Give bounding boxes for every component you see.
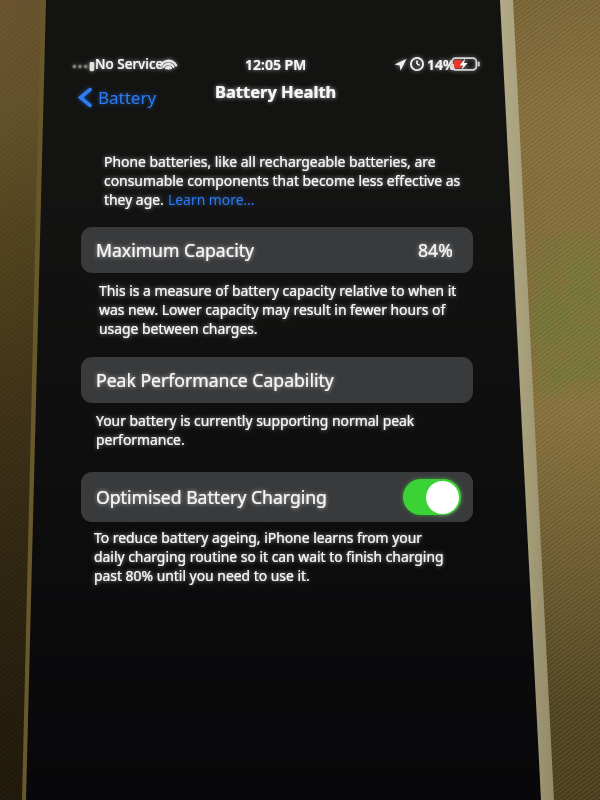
- staticText: No Service: [95, 55, 164, 73]
- button[interactable]: Optimised Battery Charging: [81, 472, 473, 522]
- staticText: consumable components that become less e…: [104, 171, 461, 190]
- staticText: 84%: [418, 238, 453, 262]
- staticText: Battery: [98, 86, 157, 109]
- staticText: daily charging routine so it can wait to…: [94, 547, 444, 566]
- staticText: 14%: [427, 55, 456, 74]
- staticText: This is a measure of battery capacity re…: [99, 281, 457, 300]
- staticText: consumable components that become less e…: [104, 171, 461, 190]
- button[interactable]: Peak Performance Capability: [81, 357, 473, 403]
- staticText: Battery: [98, 86, 157, 109]
- button[interactable]: Peak Performance Capability: [81, 357, 473, 403]
- staticText: To reduce battery ageing, iPhone learns …: [94, 528, 423, 547]
- staticText: Optimised Battery Charging: [96, 485, 327, 509]
- staticText: daily charging routine so it can wait to…: [94, 547, 444, 566]
- staticText: Phone batteries, like all rechargeable b…: [104, 152, 436, 171]
- staticText: Battery Health: [215, 80, 337, 102]
- staticText: was new. Lower capacity may result in fe…: [99, 300, 446, 319]
- staticText: Maximum Capacity: [96, 238, 255, 262]
- staticText: usage between charges.: [99, 319, 258, 338]
- staticText: 84%: [418, 238, 453, 262]
- button[interactable]: Learn more…: [168, 190, 255, 209]
- staticText: This is a measure of battery capacity re…: [99, 281, 457, 300]
- button[interactable]: Battery: [76, 86, 160, 109]
- staticText: Peak Performance Capability: [96, 368, 334, 392]
- staticText: Optimised Battery Charging: [96, 485, 327, 509]
- staticText: usage between charges.: [99, 319, 258, 338]
- button[interactable]: Battery: [76, 86, 160, 109]
- staticText: To reduce battery ageing, iPhone learns …: [94, 528, 423, 547]
- staticText: 12:05 PM: [245, 55, 307, 74]
- staticText: past 80% until you need to use it.: [94, 566, 310, 585]
- staticText: Your battery is currently supporting nor…: [96, 411, 415, 430]
- staticText: they age.: [104, 190, 168, 209]
- button[interactable]: Maximum Capacity: [81, 227, 473, 273]
- staticText: 12:05 PM: [245, 55, 307, 74]
- staticText: Maximum Capacity: [96, 238, 255, 262]
- staticText: they age.: [104, 190, 168, 209]
- staticText: Battery Health: [215, 80, 337, 102]
- staticText: Phone batteries, like all rechargeable b…: [104, 152, 436, 171]
- staticText: performance.: [96, 430, 185, 449]
- staticText: No Service: [95, 55, 164, 73]
- staticText: Peak Performance Capability: [96, 368, 334, 392]
- button[interactable]: Learn more…: [168, 190, 255, 209]
- button[interactable]: Optimised Battery Charging: [403, 479, 461, 515]
- staticText: was new. Lower capacity may result in fe…: [99, 300, 446, 319]
- staticText: performance.: [96, 430, 185, 449]
- button[interactable]: Optimised Battery Charging: [81, 472, 473, 522]
- staticText: Your battery is currently supporting nor…: [96, 411, 415, 430]
- staticText: 14%: [427, 55, 456, 74]
- button[interactable]: Maximum Capacity: [81, 227, 473, 273]
- button[interactable]: Optimised Battery Charging: [403, 479, 461, 515]
- staticText: past 80% until you need to use it.: [94, 566, 310, 585]
